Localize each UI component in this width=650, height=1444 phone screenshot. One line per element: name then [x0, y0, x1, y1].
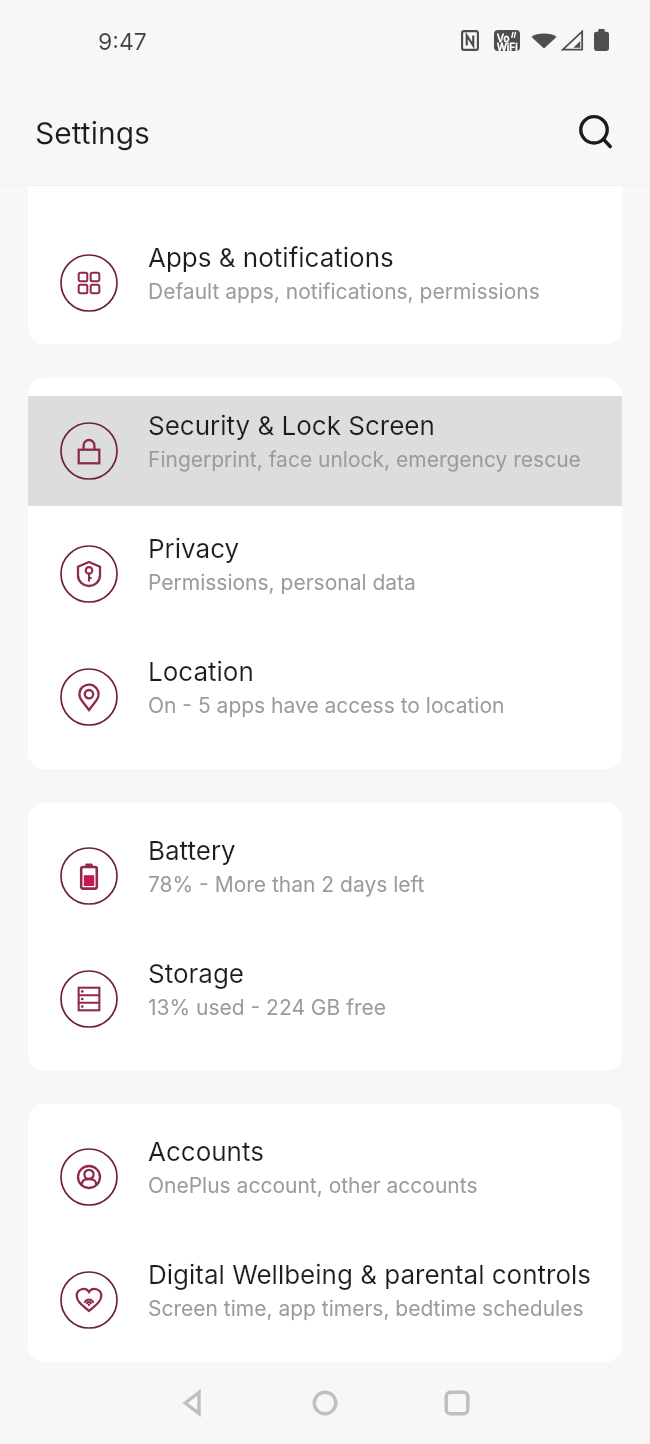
staticText: Fingerprint, face unlock, emergency resc…	[148, 447, 581, 472]
staticText: Storage	[148, 958, 245, 989]
button[interactable]: Recent apps	[391, 1362, 523, 1444]
staticText: Default apps, notifications, permissions	[148, 279, 540, 304]
button[interactable]: Battery	[28, 814, 622, 937]
staticText: On - 5 apps have access to location	[148, 693, 505, 718]
staticText: Digital Wellbeing & parental controls	[148, 1259, 592, 1290]
button[interactable]: Home	[259, 1362, 391, 1444]
staticText: Screen time, app timers, bedtime schedul…	[148, 1296, 584, 1321]
staticText: 9:47	[98, 28, 147, 56]
staticText: Battery	[148, 835, 236, 866]
staticText: 13% used - 224 GB free	[148, 995, 387, 1020]
button[interactable]: Apps & notifications	[28, 221, 622, 344]
staticText: Vo	[497, 32, 510, 44]
staticText: Security & Lock Screen	[148, 410, 435, 441]
staticText: 78% - More than 2 days left	[148, 872, 425, 897]
button[interactable]: Security & Lock Screen	[28, 389, 622, 512]
button[interactable]: Search	[568, 105, 624, 161]
button[interactable]: Accounts	[28, 1115, 622, 1238]
button[interactable]: Digital Wellbeing & parental controls	[28, 1238, 622, 1361]
staticText: Location	[148, 656, 254, 687]
staticText: WiFi	[497, 41, 518, 51]
button[interactable]: Storage	[28, 937, 622, 1060]
button[interactable]: Privacy	[28, 512, 622, 635]
staticText: Permissions, personal data	[148, 570, 416, 595]
button[interactable]: Back	[127, 1362, 259, 1444]
staticText: OnePlus account, other accounts	[148, 1173, 478, 1198]
staticText: Privacy	[148, 533, 240, 564]
staticText: Settings	[35, 115, 150, 151]
staticText: Apps & notifications	[148, 242, 394, 273]
staticText: Accounts	[148, 1136, 264, 1167]
button[interactable]: Location	[28, 635, 622, 758]
